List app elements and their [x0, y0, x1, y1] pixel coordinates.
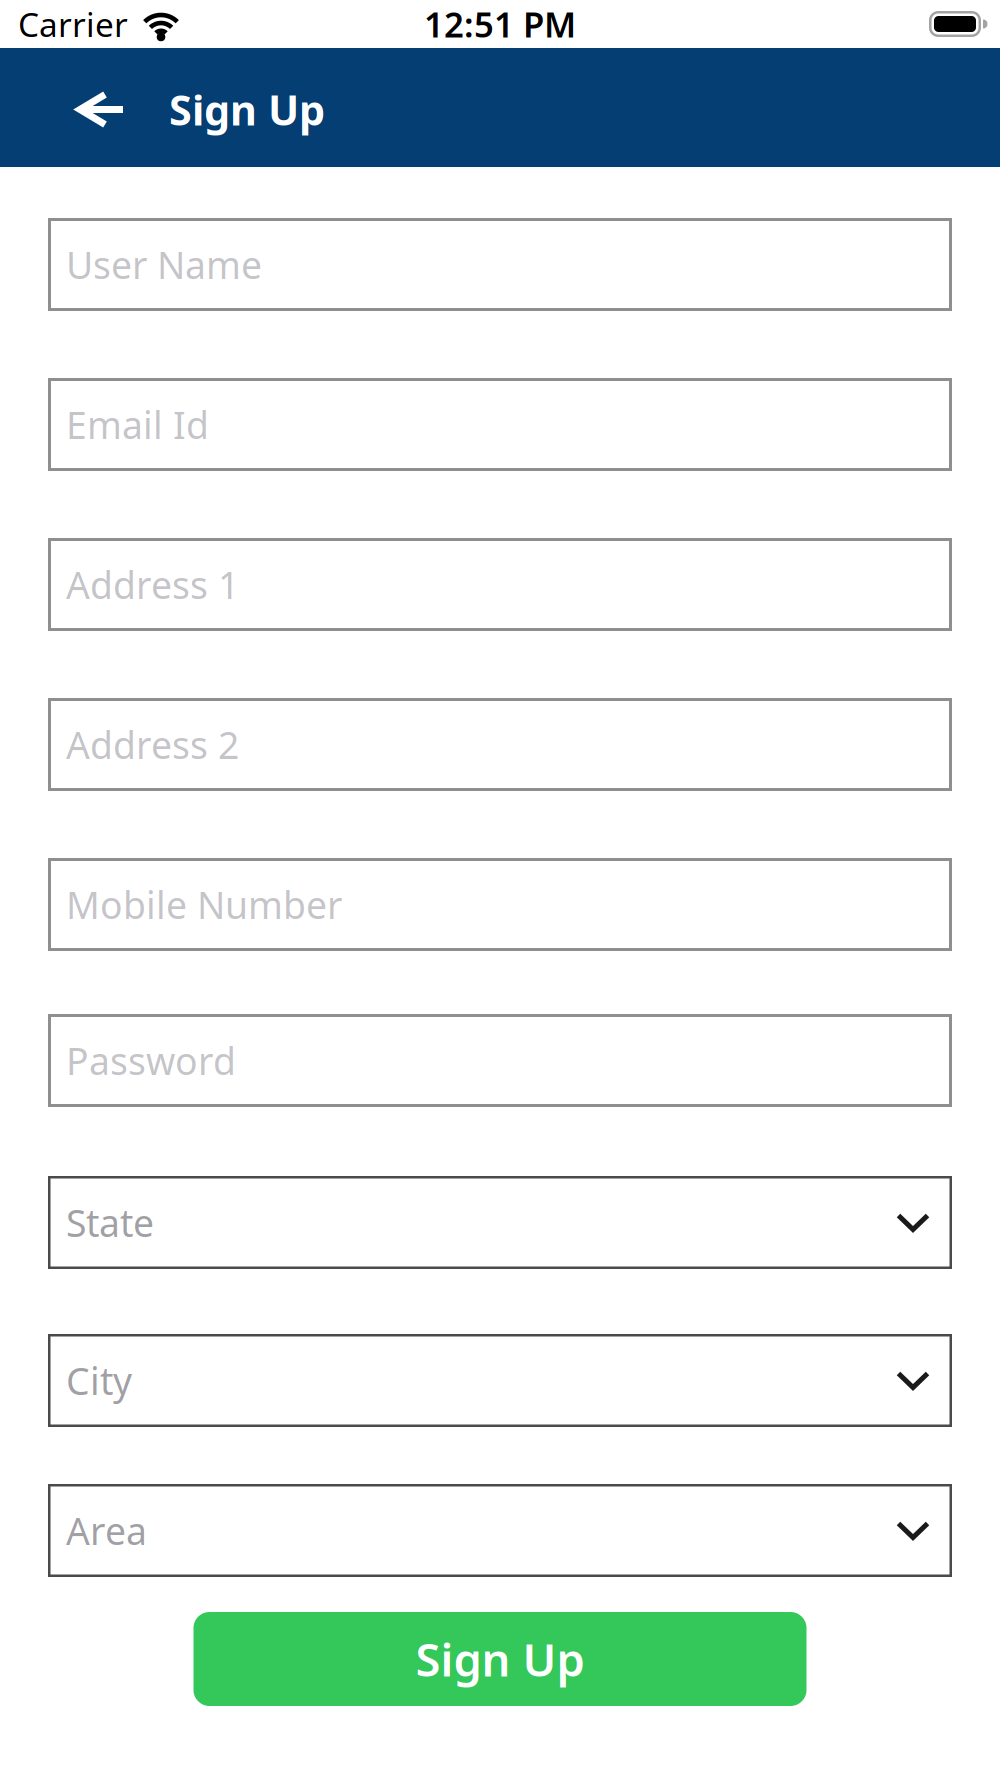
staticText: State [66, 1198, 154, 1247]
staticText: Carrier [18, 2, 128, 46]
staticText: Sign Up [169, 82, 325, 137]
button[interactable]: Email Id [48, 378, 952, 471]
button[interactable]: Address 2 [48, 698, 952, 791]
button[interactable]: Area [48, 1484, 952, 1577]
staticText: User Name [66, 240, 262, 289]
button[interactable]: User Name [48, 218, 952, 311]
staticText: Address 2 [66, 720, 239, 769]
staticText: Password [66, 1036, 236, 1085]
button[interactable]: Back [77, 89, 125, 125]
button[interactable]: State [48, 1176, 952, 1269]
button[interactable]: Address 1 [48, 538, 952, 631]
staticText: Email Id [66, 400, 209, 449]
button[interactable]: Mobile Number [48, 858, 952, 951]
button[interactable]: Sign Up [193, 1612, 806, 1706]
button[interactable]: Password [48, 1014, 952, 1107]
staticText: City [66, 1356, 132, 1405]
staticText: 12:51 PM [424, 1, 576, 47]
staticText: Area [66, 1506, 147, 1555]
staticText: Address 1 [66, 560, 239, 609]
staticText: Sign Up [415, 1629, 584, 1689]
button[interactable]: City [48, 1334, 952, 1427]
staticText: Mobile Number [66, 880, 342, 929]
